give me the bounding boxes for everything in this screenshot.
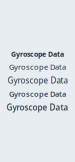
staticText: Gyroscope Data	[9, 89, 66, 99]
staticText: Gyroscope Data	[6, 102, 68, 113]
staticText: Gyroscope Data	[9, 62, 66, 72]
staticText: Gyroscope Data	[7, 75, 67, 86]
staticText: Gyroscope Data	[11, 49, 64, 59]
